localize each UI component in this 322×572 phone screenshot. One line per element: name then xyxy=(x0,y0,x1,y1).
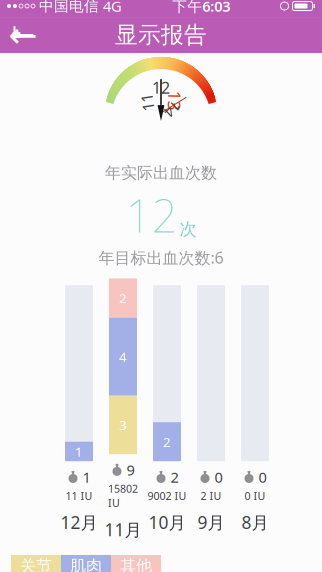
staticText: 1 xyxy=(75,443,83,460)
staticText: 其他 xyxy=(120,556,152,572)
staticText: 2 xyxy=(170,467,178,487)
button[interactable]: 关节 xyxy=(11,555,61,572)
staticText: 12月 xyxy=(60,511,97,534)
staticText: 4G xyxy=(103,0,122,16)
button[interactable]: 其他 xyxy=(111,555,161,572)
staticText: 9月 xyxy=(197,511,224,534)
staticText: 9 xyxy=(126,460,134,480)
staticText: 8月 xyxy=(241,511,268,534)
staticText: 0 xyxy=(214,467,222,487)
staticText: 2 IU xyxy=(200,489,221,503)
staticText: 次 xyxy=(179,219,196,240)
staticText: 14 xyxy=(153,91,169,110)
staticText: 1 xyxy=(82,467,90,487)
staticText: 关节 xyxy=(20,556,52,572)
staticText: 11月 xyxy=(104,518,141,541)
staticText: 13 xyxy=(151,83,171,106)
staticText: 15802 IU xyxy=(108,482,138,510)
staticText: 2 xyxy=(119,289,127,307)
staticText: 0 IU xyxy=(244,489,265,503)
staticText: 下午6:03 xyxy=(172,0,230,16)
staticText: 9002 IU xyxy=(147,489,186,503)
staticText: 2 xyxy=(163,433,171,451)
staticText: 11 IU xyxy=(65,489,92,503)
staticText: 显示报告 xyxy=(115,21,207,49)
staticText: 11 xyxy=(152,85,170,106)
staticText: 0 xyxy=(258,467,266,487)
staticText: 年实际出血次数 xyxy=(105,163,217,183)
staticText: 12 xyxy=(125,185,177,245)
button[interactable]: 肌肉 xyxy=(61,555,111,572)
staticText: 12 xyxy=(152,77,170,98)
staticText: 4 xyxy=(119,348,127,365)
staticText: 3 xyxy=(119,416,127,434)
staticText: ← xyxy=(8,15,37,55)
staticText: 中国电信 xyxy=(39,0,99,15)
staticText: 10月 xyxy=(148,511,185,534)
staticText: 肌肉 xyxy=(70,556,102,572)
button[interactable]: Back xyxy=(6,18,40,52)
staticText: 年目标出血次数:6 xyxy=(98,247,223,268)
